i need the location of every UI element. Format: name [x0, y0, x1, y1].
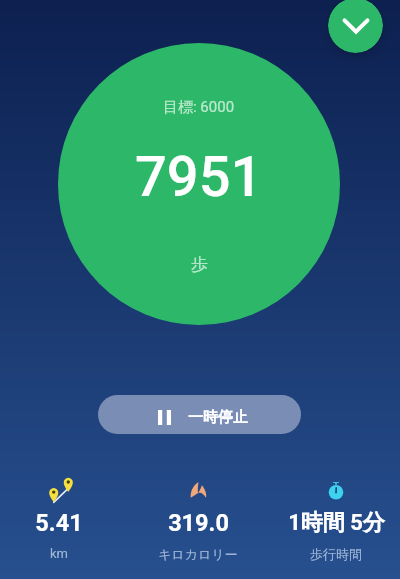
staticText: 5.41: [35, 509, 83, 537]
button[interactable]: 一時停止: [98, 395, 301, 434]
staticText: 7951: [135, 144, 263, 210]
button[interactable]: 目標: 6000: [58, 43, 340, 325]
staticText: キロカロリー: [158, 546, 238, 562]
button[interactable]: 5.41: [0, 477, 124, 569]
staticText: 1時間 5分: [288, 509, 385, 537]
staticText: 一時停止: [188, 408, 248, 427]
staticText: 歩: [191, 254, 208, 275]
staticText: 歩行時間: [310, 546, 362, 562]
staticText: 319.0: [168, 509, 229, 537]
button[interactable]: Collapse: [328, 0, 383, 53]
staticText: km: [50, 546, 68, 561]
button[interactable]: 319.0: [133, 477, 263, 569]
staticText: 目標: 6000: [163, 98, 235, 117]
button[interactable]: 1時間 5分: [271, 477, 400, 569]
